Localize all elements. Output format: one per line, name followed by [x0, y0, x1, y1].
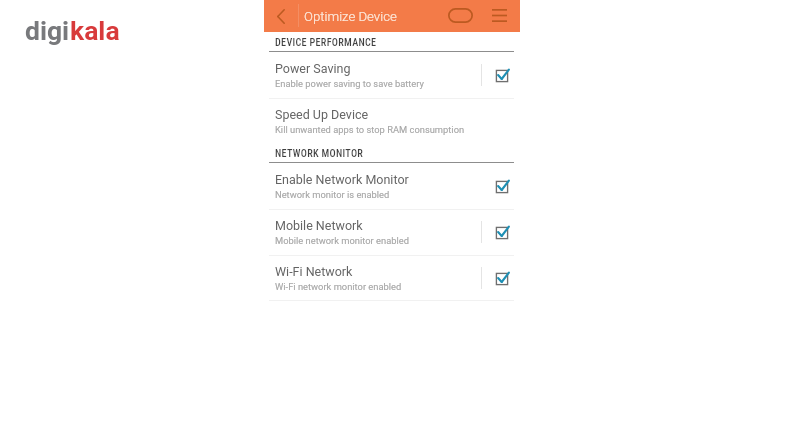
button[interactable]	[264, 99, 520, 144]
staticText: Speed Up Device	[275, 107, 369, 122]
button[interactable]: Mobile Network	[490, 225, 514, 241]
staticText: Kill unwanted apps to stop RAM consumpti…	[275, 124, 465, 135]
button[interactable]	[264, 256, 520, 300]
staticText: NETWORK MONITOR	[275, 148, 364, 160]
button[interactable]	[264, 210, 520, 255]
staticText: digi	[25, 15, 70, 46]
staticText: Power Saving	[275, 61, 351, 76]
button[interactable]: Memory boost	[443, 2, 478, 28]
button[interactable]: Power Saving	[490, 68, 514, 84]
button[interactable]: Navigate up	[270, 2, 292, 30]
staticText: Enable Network Monitor	[275, 172, 409, 187]
staticText: Wi-Fi network monitor enabled	[275, 281, 402, 292]
button[interactable]: Menu	[487, 2, 511, 28]
staticText: DEVICE PERFORMANCE	[275, 37, 377, 49]
button[interactable]	[264, 163, 520, 209]
staticText: Optimize Device	[304, 9, 397, 24]
button[interactable]	[264, 52, 520, 98]
staticText: Mobile network monitor enabled	[275, 235, 409, 246]
staticText: Enable power saving to save battery	[275, 78, 424, 89]
staticText: Mobile Network	[275, 218, 363, 233]
staticText: Network monitor is enabled	[275, 189, 390, 200]
staticText: kala	[70, 15, 120, 46]
staticText: Wi-Fi Network	[275, 264, 353, 279]
button[interactable]: Wi-Fi Network	[490, 271, 514, 287]
button[interactable]: Enable Network Monitor	[490, 179, 514, 195]
